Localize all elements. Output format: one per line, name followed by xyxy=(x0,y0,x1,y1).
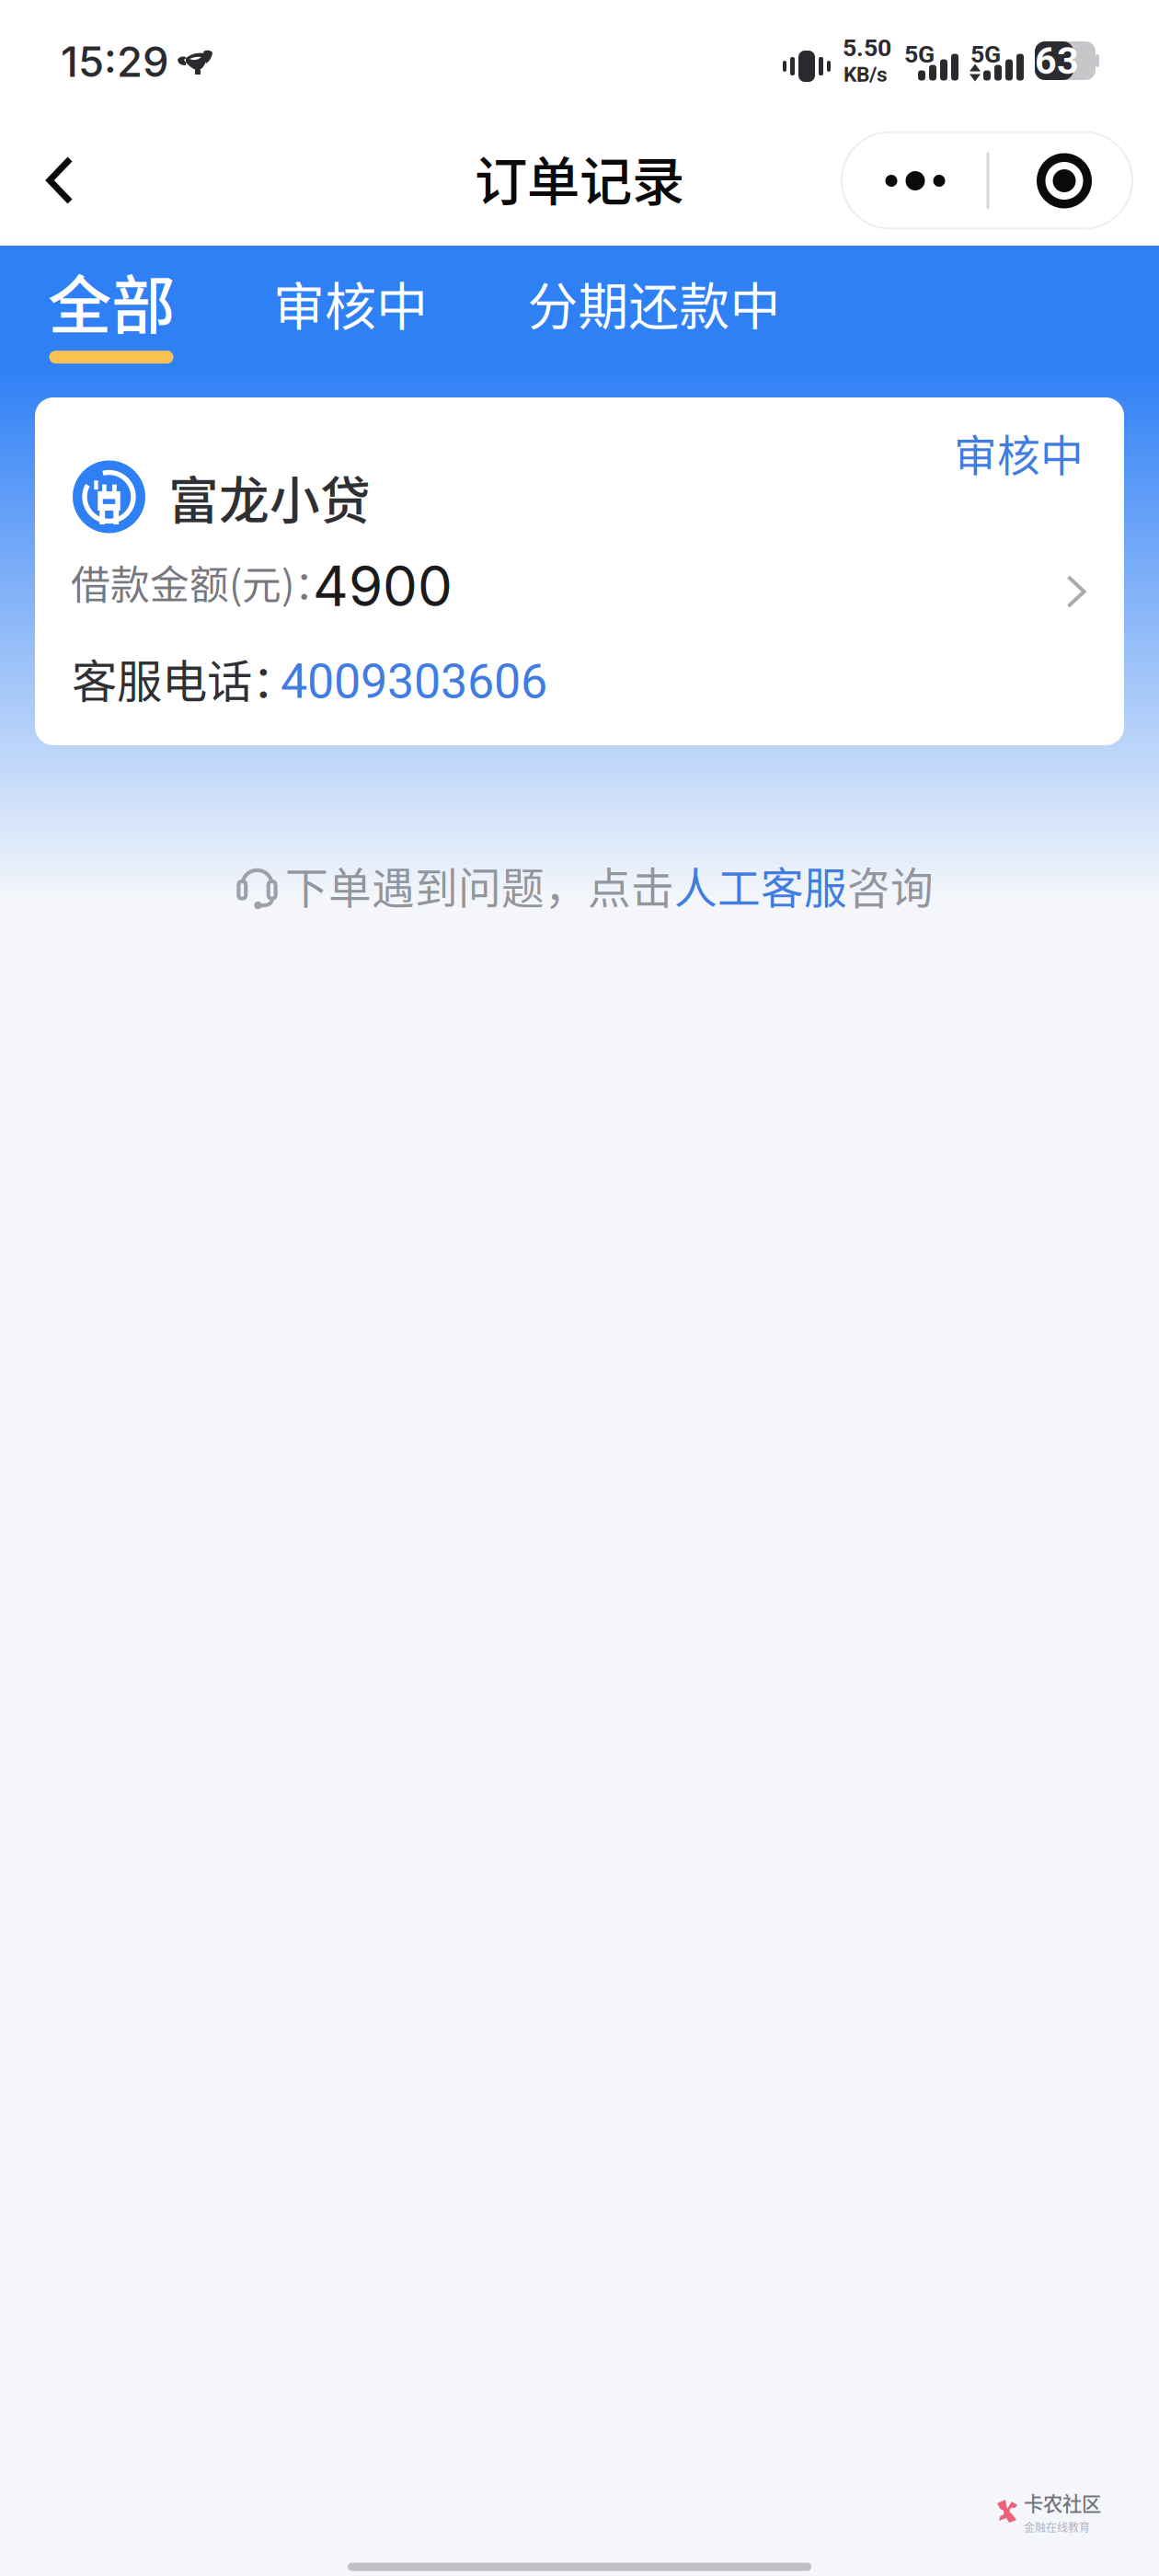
staticText: 63 xyxy=(1035,38,1079,83)
staticText: 订单记录 xyxy=(475,139,684,216)
staticText: 4900 xyxy=(313,553,453,619)
staticText: 分期还款中 xyxy=(528,266,780,339)
staticText: 下单遇到问题，点击 xyxy=(285,854,674,916)
button[interactable]: 全部 xyxy=(17,242,206,376)
staticText: 5.50 xyxy=(843,33,891,62)
staticText: 富龙小贷 xyxy=(168,460,371,533)
staticText: 借款金额(元)： xyxy=(71,554,334,611)
staticText: 客服电话： xyxy=(72,645,297,711)
staticText: 15:29 xyxy=(61,36,169,87)
button[interactable]: 分期还款中 xyxy=(494,240,814,365)
staticText: 人工客服 xyxy=(674,854,847,916)
button[interactable]: 富龙小贷 xyxy=(35,397,1124,745)
staticText: 卡农社区 xyxy=(1024,2489,1101,2517)
staticText: KB/s xyxy=(843,62,888,87)
button[interactable]: 审核中 xyxy=(240,240,461,366)
staticText: 金融在线教育 xyxy=(1024,2519,1090,2535)
staticText: 咨询 xyxy=(847,854,934,916)
staticText: 全部 xyxy=(48,255,175,347)
button[interactable]: 更多 xyxy=(842,132,1132,229)
staticText: 审核中 xyxy=(273,265,428,340)
button[interactable]: 返回 xyxy=(9,126,110,235)
staticText: 5G xyxy=(904,40,935,69)
staticText: 5G xyxy=(970,40,1001,69)
staticText: 审核中 xyxy=(954,422,1084,484)
staticText: 4009303606 xyxy=(281,653,547,710)
button[interactable]: 下单遇到问题，点击 xyxy=(224,841,945,929)
